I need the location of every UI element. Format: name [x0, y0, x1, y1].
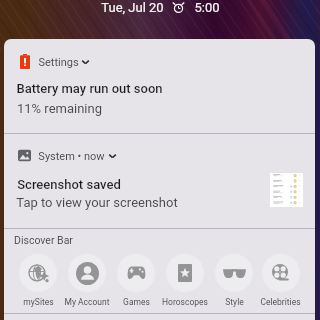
- staticText: Celebrities: [260, 297, 301, 307]
- button[interactable]: System • now: [4, 134, 315, 228]
- button[interactable]: mySites: [19, 254, 57, 307]
- staticText: Tue, Jul 20: [101, 0, 164, 15]
- staticText: My Account: [64, 297, 110, 307]
- button[interactable]: My Account: [64, 254, 110, 307]
- staticText: Settings: [38, 56, 79, 69]
- staticText: mySites: [23, 297, 54, 307]
- staticText: Discover Bar: [14, 234, 73, 246]
- staticText: Games: [123, 297, 150, 307]
- button[interactable]: Games: [117, 254, 155, 307]
- staticText: System • now: [38, 150, 105, 163]
- button[interactable]: Style: [215, 254, 253, 307]
- staticText: 11% remaining: [17, 101, 102, 116]
- staticText: Style: [225, 297, 244, 307]
- button[interactable]: Settings: [4, 39, 315, 133]
- staticText: Screenshot saved: [17, 177, 121, 192]
- staticText: Battery may run out soon: [16, 81, 163, 96]
- staticText: Horoscopes: [162, 297, 208, 307]
- button[interactable]: Celebrities: [260, 254, 301, 307]
- staticText: Tap to view your screenshot: [16, 195, 178, 210]
- button[interactable]: Horoscopes: [162, 254, 208, 307]
- staticText: 5:00: [194, 0, 220, 15]
